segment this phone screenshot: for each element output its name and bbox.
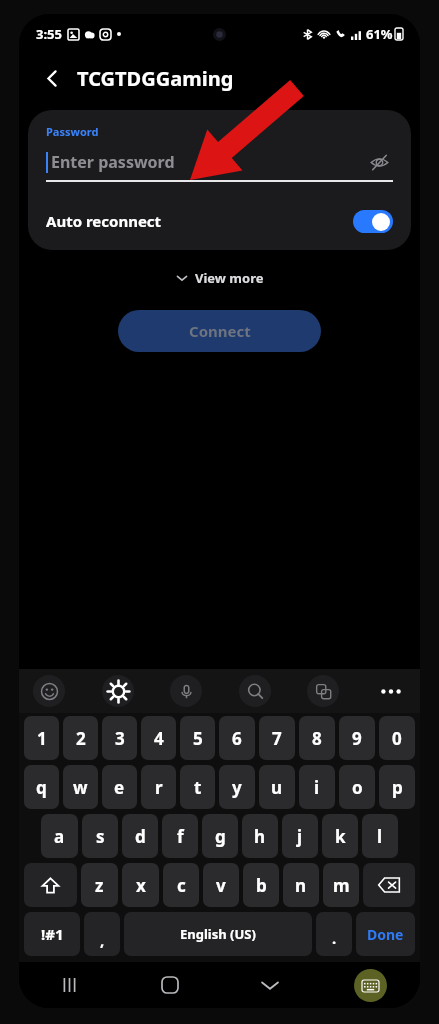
button[interactable]: e <box>102 765 137 809</box>
button[interactable]: Search <box>239 675 271 707</box>
staticText: 2 <box>76 727 86 750</box>
staticText: k <box>335 825 346 848</box>
button[interactable]: Keyboard switcher <box>354 969 387 1002</box>
staticText: t <box>194 776 202 799</box>
button[interactable]: 9 <box>339 716 375 760</box>
staticText: c <box>177 874 186 897</box>
staticText: d <box>135 825 146 848</box>
button[interactable]: 2 <box>63 716 98 760</box>
staticText: a <box>54 825 65 848</box>
staticText: z <box>95 874 104 897</box>
button[interactable]: f <box>162 814 198 858</box>
button[interactable]: 6 <box>219 716 255 760</box>
staticText: 4 <box>154 727 164 750</box>
button[interactable]: More options <box>376 676 406 706</box>
staticText: e <box>114 776 125 799</box>
button[interactable]: Show password <box>365 148 393 176</box>
staticText: l <box>377 825 383 848</box>
button[interactable]: Done <box>356 912 415 956</box>
staticText: 3:55 <box>36 25 62 43</box>
staticText: 61% <box>366 25 393 43</box>
button[interactable]: . <box>316 912 352 956</box>
button[interactable]: c <box>163 863 199 907</box>
button[interactable]: v <box>203 863 239 907</box>
staticText: r <box>155 776 163 799</box>
staticText: i <box>314 776 320 799</box>
button[interactable]: Back <box>33 59 71 97</box>
button[interactable]: Backspace <box>363 863 415 907</box>
staticText: y <box>232 776 242 799</box>
staticText: Enter password <box>51 151 365 173</box>
staticText: , <box>100 930 105 950</box>
staticText: u <box>271 776 283 799</box>
staticText: f <box>177 825 184 848</box>
button[interactable]: Auto reconnect toggle <box>353 210 393 233</box>
staticText: !#1 <box>41 924 64 944</box>
button[interactable]: q <box>24 765 59 809</box>
button[interactable]: 8 <box>299 716 335 760</box>
staticText: . <box>332 928 337 948</box>
button[interactable]: 3 <box>102 716 137 760</box>
button[interactable]: j <box>282 814 318 858</box>
button[interactable]: Emoji <box>33 675 65 707</box>
button[interactable]: English (US) <box>124 912 312 956</box>
button[interactable]: z <box>81 863 118 907</box>
button[interactable]: s <box>82 814 118 858</box>
staticText: Password <box>46 124 99 139</box>
button[interactable]: a <box>41 814 78 858</box>
button[interactable]: , <box>84 912 120 956</box>
button[interactable]: Voice input <box>170 675 202 707</box>
staticText: g <box>215 825 226 848</box>
button[interactable]: o <box>339 765 375 809</box>
staticText: j <box>297 825 303 848</box>
button[interactable]: 1 <box>24 716 59 760</box>
button[interactable]: Auto reconnect <box>28 192 411 250</box>
button[interactable]: Hide keyboard <box>220 962 320 1008</box>
staticText: 7 <box>272 727 282 750</box>
staticText: n <box>295 874 307 897</box>
staticText: English (US) <box>180 925 256 943</box>
button[interactable]: View more <box>162 264 278 292</box>
staticText: 6 <box>232 727 242 750</box>
button[interactable]: Shift <box>24 863 77 907</box>
button[interactable]: d <box>122 814 158 858</box>
staticText: Done <box>367 925 404 944</box>
button[interactable]: 7 <box>259 716 295 760</box>
staticText: s <box>96 825 105 848</box>
button[interactable]: Connect <box>118 310 321 352</box>
button[interactable]: p <box>379 765 415 809</box>
button[interactable]: u <box>259 765 295 809</box>
button[interactable]: Settings <box>102 675 134 707</box>
staticText: h <box>254 825 266 848</box>
button[interactable]: t <box>180 765 215 809</box>
staticText: x <box>136 874 146 897</box>
staticText: Connect <box>189 321 251 341</box>
button[interactable]: w <box>63 765 98 809</box>
staticText: Auto reconnect <box>46 211 353 231</box>
button[interactable]: Translate <box>307 675 339 707</box>
button[interactable]: !#1 <box>24 912 80 956</box>
staticText: o <box>352 776 363 799</box>
staticText: p <box>392 776 403 799</box>
button[interactable]: n <box>283 863 319 907</box>
staticText: 1 <box>37 727 47 750</box>
button[interactable]: Home <box>120 962 220 1008</box>
button[interactable]: 0 <box>379 716 415 760</box>
button[interactable]: i <box>299 765 335 809</box>
staticText: 3 <box>115 727 125 750</box>
button[interactable]: l <box>362 814 398 858</box>
button[interactable]: Recents <box>19 962 120 1008</box>
button[interactable]: 5 <box>180 716 215 760</box>
button[interactable]: h <box>242 814 278 858</box>
staticText: TCGTDGGaming <box>77 65 234 92</box>
button[interactable]: k <box>322 814 358 858</box>
button[interactable]: r <box>141 765 176 809</box>
button[interactable]: 4 <box>141 716 176 760</box>
button[interactable]: y <box>219 765 255 809</box>
button[interactable]: x <box>122 863 159 907</box>
button[interactable]: b <box>243 863 279 907</box>
button[interactable]: m <box>323 863 359 907</box>
staticText: 8 <box>312 727 322 750</box>
button[interactable]: g <box>202 814 238 858</box>
button[interactable]: Password <box>28 110 411 192</box>
